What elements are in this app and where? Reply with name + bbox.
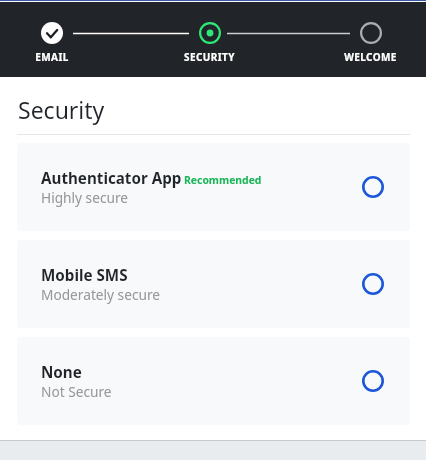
button[interactable]: Authenticator App [17, 143, 410, 231]
staticText: Highly secure [41, 188, 129, 207]
button[interactable]: Select None [358, 366, 388, 396]
staticText: Not Secure [41, 382, 112, 401]
button[interactable]: None [17, 337, 410, 425]
button[interactable]: WELCOME [320, 22, 420, 64]
staticText: Mobile SMS [41, 265, 128, 286]
staticText: EMAIL [35, 50, 69, 64]
staticText: Security [18, 94, 105, 125]
button[interactable]: Select Mobile SMS [358, 269, 388, 299]
staticText: SECURITY [184, 50, 235, 64]
staticText: Moderately secure [41, 285, 161, 304]
staticText: None [41, 362, 82, 383]
staticText: Authenticator App [41, 168, 182, 189]
button[interactable]: SECURITY [159, 22, 259, 64]
staticText: Recommended [184, 173, 262, 187]
button[interactable]: Select Authenticator App [358, 172, 388, 202]
button[interactable]: EMAIL [2, 22, 102, 64]
button[interactable]: Mobile SMS [17, 240, 410, 328]
staticText: WELCOME [344, 50, 397, 64]
